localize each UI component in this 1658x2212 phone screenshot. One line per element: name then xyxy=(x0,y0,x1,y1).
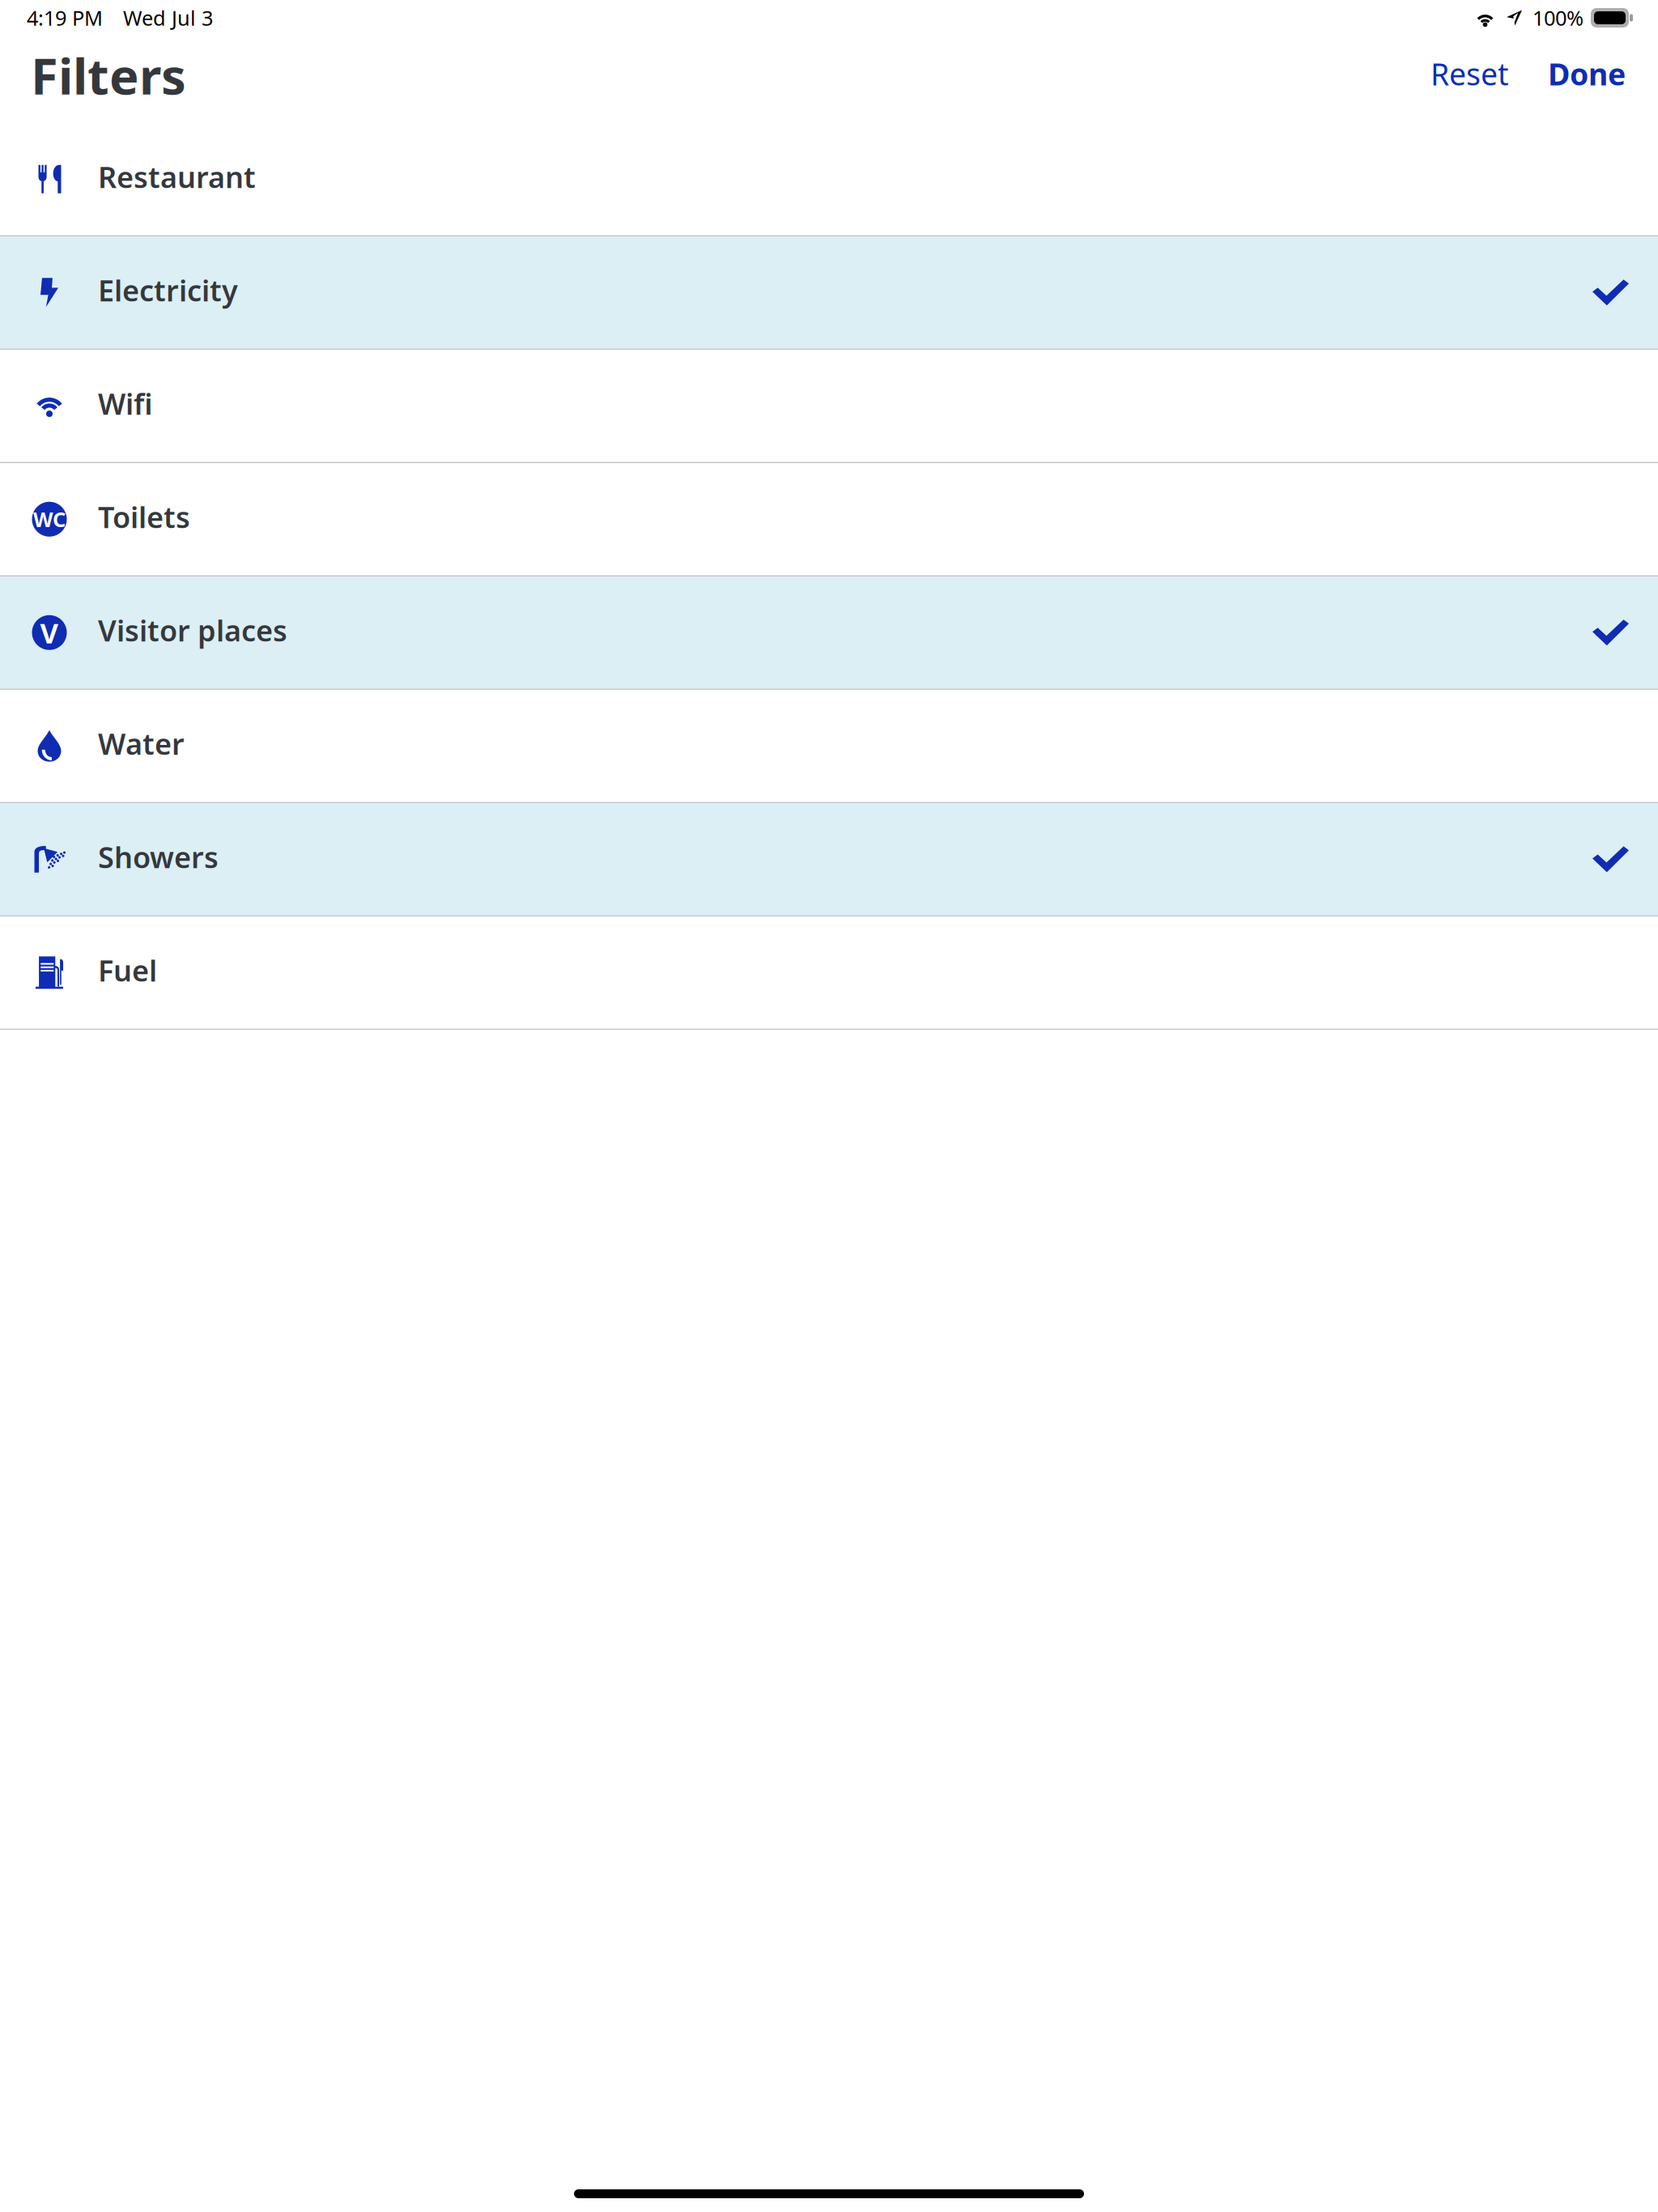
staticText: Toilets xyxy=(98,497,190,536)
staticText: Water xyxy=(98,724,185,763)
staticText: WC xyxy=(33,506,66,533)
button[interactable]: Restaurant xyxy=(0,123,1658,235)
staticText: 100% xyxy=(1533,4,1584,31)
button[interactable]: Water xyxy=(0,690,1658,802)
staticText: Fuel xyxy=(98,951,157,989)
button[interactable]: Electricity xyxy=(0,236,1658,349)
staticText: Reset xyxy=(1431,54,1508,94)
staticText: V xyxy=(40,614,59,651)
staticText: Done xyxy=(1548,54,1626,94)
button[interactable]: Reset xyxy=(1431,59,1508,99)
button[interactable]: V xyxy=(0,576,1658,689)
staticText: 4:19 PM xyxy=(27,4,103,31)
staticText: Showers xyxy=(98,837,219,876)
button[interactable]: Showers xyxy=(0,803,1658,915)
staticText: Restaurant xyxy=(98,157,256,196)
staticText: Filters xyxy=(31,42,186,108)
staticText: Electricity xyxy=(98,271,238,309)
button[interactable]: Fuel xyxy=(0,917,1658,1029)
button[interactable]: WC xyxy=(0,463,1658,575)
staticText: Wed Jul 3 xyxy=(123,4,213,31)
button[interactable]: Wifi xyxy=(0,350,1658,462)
button[interactable]: Done xyxy=(1508,59,1626,99)
staticText: Visitor places xyxy=(98,611,287,649)
staticText: Wifi xyxy=(98,384,153,423)
